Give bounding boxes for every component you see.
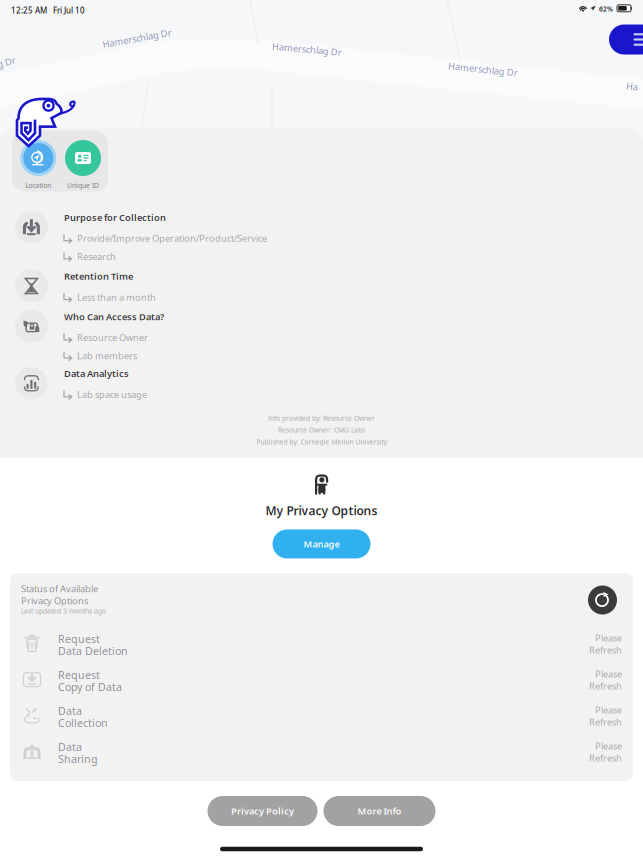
staticText: Hamerschlag Dr — [448, 63, 518, 75]
staticText: Hamerschlag Dr — [102, 32, 172, 44]
staticText: Refresh — [589, 752, 622, 764]
staticText: Refresh — [589, 680, 622, 692]
staticText: Research — [77, 250, 116, 263]
staticText: Copy of Data — [58, 680, 122, 694]
button[interactable]: Manage — [272, 529, 370, 558]
staticText: Status of Available — [21, 582, 98, 595]
staticText: Sharing — [58, 752, 98, 766]
staticText: Unique ID — [67, 181, 99, 190]
staticText: Refresh — [589, 716, 622, 728]
button[interactable]: More Info — [323, 796, 435, 826]
staticText: Retention Time — [64, 270, 133, 282]
button[interactable]: Data — [21, 740, 622, 776]
button[interactable]: Request — [21, 632, 622, 668]
staticText: Hamerschlag Dr — [272, 43, 342, 55]
staticText: Less than a month — [77, 291, 156, 303]
staticText: Provide/Improve Operation/Product/Servic… — [77, 232, 267, 244]
staticText: Please — [595, 668, 622, 680]
staticText: Purpose for Collection — [64, 211, 166, 224]
staticText: Lab space usage — [77, 388, 147, 401]
button[interactable]: Location — [16, 140, 60, 190]
staticText: 62% — [599, 5, 613, 13]
staticText: Last updated 3 months ago — [21, 606, 106, 615]
staticText: Resource Owner: CMU Labs — [278, 426, 365, 434]
staticText: Info provided by: Resource Owner — [268, 414, 375, 423]
button[interactable]: Data — [21, 704, 622, 740]
staticText: Data — [58, 740, 82, 754]
staticText: Manage — [303, 538, 339, 550]
staticText: Collection — [58, 716, 108, 730]
staticText: Location — [25, 181, 51, 190]
staticText: Who Can Access Data? — [64, 310, 164, 323]
button[interactable]: Request — [21, 668, 622, 704]
staticText: Data Analytics — [64, 367, 129, 380]
staticText: Please — [595, 704, 622, 716]
staticText: Privacy Policy — [231, 805, 294, 817]
button[interactable]: Refresh — [588, 585, 617, 614]
staticText: More Info — [357, 805, 401, 817]
staticText: 12:25 AM — [11, 5, 47, 16]
button[interactable]: Menu — [609, 24, 643, 54]
button[interactable]: Unique ID — [61, 140, 105, 190]
staticText: Data — [58, 704, 82, 718]
staticText: g Dr — [0, 56, 16, 68]
staticText: Fri Jul 10 — [53, 5, 85, 16]
button[interactable]: Privacy Policy — [207, 796, 317, 826]
staticText: My Privacy Options — [265, 502, 377, 518]
staticText: Please — [595, 740, 622, 752]
staticText: Request — [58, 668, 100, 682]
staticText: Resource Owner — [77, 331, 148, 344]
staticText: Lab members — [77, 349, 137, 362]
staticText: Refresh — [589, 644, 622, 656]
staticText: Data Deletion — [58, 644, 128, 658]
staticText: Ha — [626, 80, 638, 92]
staticText: Published by: Carnegie Mellon University — [256, 437, 386, 446]
staticText: Please — [595, 632, 622, 644]
staticText: Request — [58, 632, 100, 646]
staticText: Privacy Options — [21, 594, 88, 607]
